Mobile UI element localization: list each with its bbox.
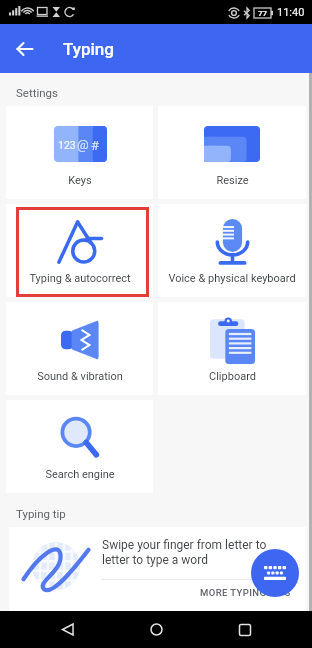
button[interactable]: Recents: [224, 611, 266, 648]
button[interactable]: Typing & autocorrect: [6, 204, 153, 297]
button[interactable]: Sound & vibration: [6, 302, 153, 395]
staticText: Settings: [16, 86, 58, 99]
button[interactable]: Clipboard: [158, 302, 306, 395]
staticText: Typing & autocorrect: [29, 272, 131, 285]
button[interactable]: Home: [135, 611, 177, 648]
staticText: Sound & vibration: [37, 370, 123, 383]
button[interactable]: 123: [6, 106, 153, 199]
staticText: Clipboard: [209, 370, 256, 383]
staticText: 123: [58, 139, 76, 151]
staticText: #: [91, 138, 100, 153]
staticText: Typing tip: [16, 507, 66, 520]
button[interactable]: Voice & physical keyboard: [158, 204, 306, 297]
staticText: Keys: [68, 174, 92, 187]
staticText: 11:40: [277, 6, 305, 19]
staticText: Resize: [216, 174, 249, 187]
button[interactable]: Back: [10, 34, 40, 64]
button[interactable]: MORE TYPING TIPS: [200, 587, 294, 598]
staticText: MORE TYPING TIPS: [200, 587, 291, 598]
staticText: Typing: [63, 39, 114, 59]
button[interactable]: Open keyboard: [251, 549, 299, 597]
button[interactable]: Swipe your finger from letter to letter …: [9, 527, 306, 611]
staticText: 77: [258, 9, 268, 18]
staticText: Swipe your finger from letter to letter …: [102, 538, 294, 567]
staticText: @: [77, 137, 89, 152]
button[interactable]: Search engine: [6, 400, 153, 493]
button[interactable]: Back: [47, 611, 89, 648]
staticText: Voice & physical keyboard: [168, 272, 296, 285]
button[interactable]: Resize: [158, 106, 306, 199]
staticText: Search engine: [45, 468, 115, 481]
